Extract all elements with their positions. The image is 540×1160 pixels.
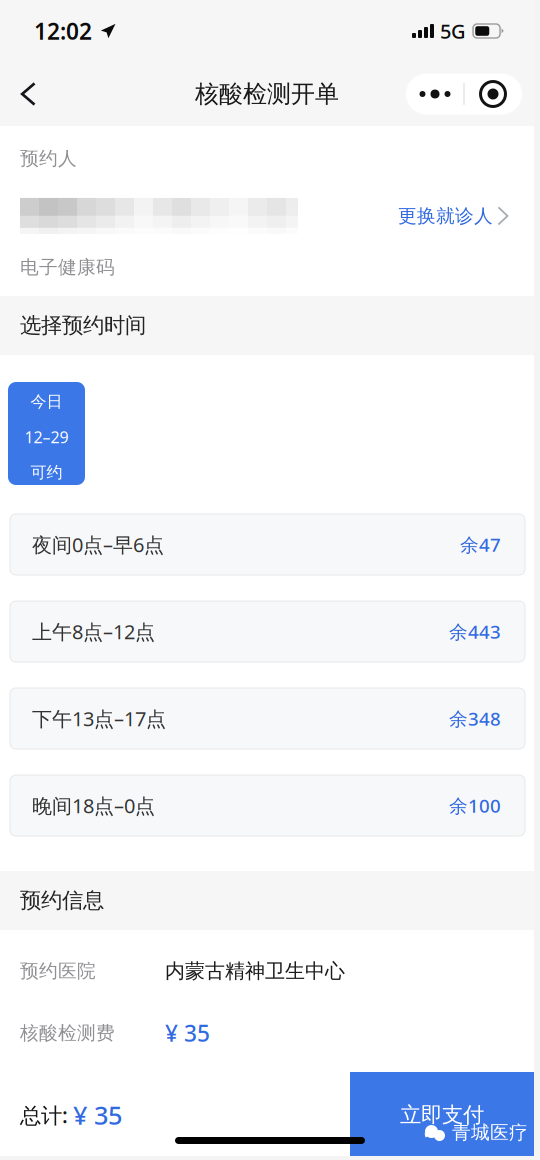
staticText: 青城医疗	[452, 1121, 528, 1144]
button[interactable]: 更多	[406, 73, 463, 114]
staticText: 核酸检测开单	[195, 79, 339, 109]
staticText: 今日	[30, 392, 62, 411]
staticText: 更换就诊人	[398, 204, 493, 227]
button[interactable]: 小程序菜单	[464, 73, 521, 114]
staticText: 可约	[30, 463, 62, 482]
staticText: ¥ 35	[165, 1018, 210, 1048]
staticText: 5G	[440, 18, 466, 44]
staticText: 下午13点–17点	[32, 705, 166, 732]
staticText: 夜间0点–早6点	[32, 531, 164, 558]
staticText: 内蒙古精神卫生中心	[165, 959, 345, 983]
staticText: 余443	[449, 619, 501, 644]
staticText: 电子健康码	[20, 256, 115, 279]
staticText: 预约人	[20, 147, 77, 170]
staticText: 12–29	[24, 426, 68, 448]
staticText: ¥ 35	[73, 1098, 122, 1132]
staticText: 晚间18点–0点	[32, 792, 155, 819]
staticText: 选择预约时间	[20, 312, 146, 339]
staticText: 余47	[460, 532, 501, 557]
button[interactable]: 今日	[8, 382, 85, 485]
staticText: 上午8点–12点	[32, 618, 155, 645]
button[interactable]: 立即支付	[350, 1072, 534, 1158]
button[interactable]: 上午8点–12点	[10, 601, 525, 662]
button[interactable]: 晚间18点–0点	[10, 775, 525, 836]
staticText: 预约医院	[20, 959, 96, 982]
button[interactable]: 更换就诊人	[398, 204, 534, 227]
button[interactable]: 返回	[0, 65, 57, 123]
staticText: 立即支付	[400, 1102, 484, 1128]
staticText: 余348	[449, 706, 501, 731]
staticText: 余100	[449, 793, 501, 818]
staticText: 12:02	[34, 16, 92, 46]
button[interactable]: 下午13点–17点	[10, 688, 525, 749]
staticText: 预约信息	[20, 887, 104, 914]
staticText: 总计:	[20, 1101, 68, 1129]
button[interactable]: 夜间0点–早6点	[10, 514, 525, 575]
staticText: 核酸检测费	[20, 1021, 115, 1044]
